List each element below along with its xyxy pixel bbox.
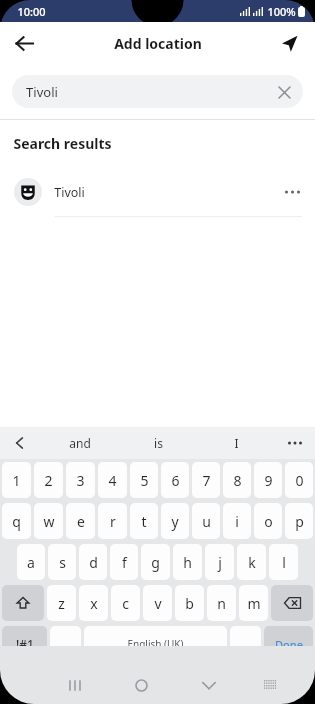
button[interactable]: g: [141, 544, 170, 580]
button[interactable]: English (UK): [84, 626, 227, 662]
button[interactable]: v: [143, 585, 172, 621]
staticText: s: [59, 553, 66, 572]
button[interactable]: .: [230, 626, 261, 662]
button[interactable]: m: [239, 585, 268, 621]
button[interactable]: 8: [223, 462, 251, 498]
staticText: Tivoli: [54, 184, 85, 201]
button[interactable]: !#1: [2, 626, 47, 662]
staticText: d: [89, 553, 98, 572]
staticText: t: [141, 512, 147, 531]
staticText: f: [122, 553, 127, 572]
staticText: e: [77, 512, 85, 531]
button[interactable]: x: [79, 585, 108, 621]
button[interactable]: Tivoli: [12, 75, 303, 108]
staticText: g: [151, 553, 160, 572]
staticText: I: [234, 435, 239, 451]
button[interactable]: 7: [192, 462, 220, 498]
button[interactable]: z: [47, 585, 76, 621]
button[interactable]: h: [173, 544, 202, 580]
button[interactable]: q: [2, 503, 31, 539]
button[interactable]: Hide keyboard: [175, 666, 242, 704]
staticText: !#1: [16, 636, 34, 652]
staticText: Add location: [114, 34, 202, 53]
button[interactable]: Tivoli: [0, 168, 315, 216]
staticText: 6: [171, 471, 180, 490]
staticText: 4: [108, 471, 117, 490]
button[interactable]: k: [237, 544, 266, 580]
button[interactable]: e: [66, 503, 95, 539]
staticText: Done: [275, 637, 303, 652]
button[interactable]: Backspace: [271, 585, 313, 621]
staticText: b: [185, 594, 194, 613]
staticText: a: [27, 553, 35, 572]
staticText: English (UK): [127, 637, 184, 651]
staticText: is: [154, 435, 163, 451]
staticText: 8: [233, 471, 242, 490]
button[interactable]: a: [17, 544, 45, 580]
button[interactable]: o: [254, 503, 282, 539]
staticText: ,: [64, 635, 68, 654]
button[interactable]: Recent apps: [42, 666, 108, 704]
button[interactable]: 0: [285, 462, 313, 498]
button[interactable]: t: [130, 503, 158, 539]
button[interactable]: f: [110, 544, 138, 580]
button[interactable]: 2: [34, 462, 63, 498]
staticText: u: [202, 512, 211, 531]
button[interactable]: Done: [264, 626, 313, 662]
button[interactable]: Back: [6, 25, 42, 61]
staticText: l: [282, 553, 286, 572]
button[interactable]: 5: [130, 462, 158, 498]
staticText: and: [69, 435, 91, 451]
staticText: w: [43, 512, 55, 531]
button[interactable]: s: [48, 544, 76, 580]
staticText: 7: [202, 471, 211, 490]
button[interactable]: u: [192, 503, 220, 539]
button[interactable]: and: [40, 427, 119, 459]
button[interactable]: Home: [108, 666, 175, 704]
staticText: x: [90, 594, 98, 613]
button[interactable]: Switch keyboard: [242, 666, 299, 704]
button[interactable]: I: [197, 427, 275, 459]
staticText: m: [247, 594, 261, 613]
button[interactable]: 3: [66, 462, 95, 498]
button[interactable]: Previous suggestions: [0, 427, 40, 459]
staticText: h: [183, 553, 192, 572]
staticText: Search results: [13, 134, 112, 153]
staticText: 5: [140, 471, 149, 490]
staticText: j: [218, 553, 222, 572]
button[interactable]: More options: [275, 175, 309, 209]
button[interactable]: 6: [161, 462, 189, 498]
button[interactable]: p: [285, 503, 313, 539]
button[interactable]: More suggestions: [275, 427, 315, 459]
staticText: v: [154, 594, 162, 613]
staticText: o: [264, 512, 273, 531]
button[interactable]: l: [269, 544, 298, 580]
staticText: .: [244, 635, 248, 654]
button[interactable]: n: [207, 585, 236, 621]
button[interactable]: d: [79, 544, 107, 580]
staticText: n: [217, 594, 226, 613]
button[interactable]: c: [111, 585, 140, 621]
button[interactable]: Clear text: [269, 77, 299, 107]
button[interactable]: j: [205, 544, 234, 580]
staticText: y: [171, 512, 179, 531]
button[interactable]: ,: [50, 626, 81, 662]
staticText: 0: [295, 471, 304, 490]
button[interactable]: r: [98, 503, 127, 539]
button[interactable]: 4: [98, 462, 127, 498]
staticText: z: [58, 594, 65, 613]
button[interactable]: Current location: [271, 25, 307, 61]
button[interactable]: 9: [254, 462, 282, 498]
button[interactable]: w: [34, 503, 63, 539]
button[interactable]: y: [161, 503, 189, 539]
staticText: Tivoli: [26, 83, 58, 101]
button[interactable]: b: [175, 585, 204, 621]
button[interactable]: is: [119, 427, 197, 459]
staticText: r: [110, 512, 116, 531]
staticText: 2: [44, 471, 53, 490]
staticText: k: [248, 553, 256, 572]
button[interactable]: i: [223, 503, 251, 539]
staticText: 1: [12, 471, 21, 490]
button[interactable]: 1: [2, 462, 31, 498]
button[interactable]: Shift: [2, 585, 44, 621]
